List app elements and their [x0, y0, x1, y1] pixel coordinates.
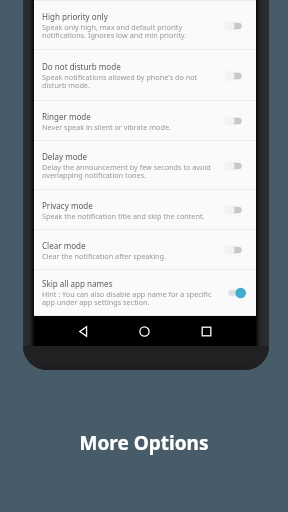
staticText: Delay mode	[42, 151, 88, 162]
staticText: Skip all app names	[42, 278, 113, 289]
button[interactable]: Ringer mode	[34, 101, 256, 141]
button[interactable]: Back	[71, 319, 95, 343]
button[interactable]: Home	[132, 319, 156, 343]
staticText: Do not disturb mode	[42, 61, 121, 72]
button[interactable]: Switch off	[224, 114, 246, 128]
staticText: High priority only	[42, 11, 108, 22]
button[interactable]: Recent apps	[194, 319, 218, 343]
button[interactable]: Switch off	[224, 203, 246, 217]
button[interactable]: Clear mode	[34, 230, 256, 270]
button[interactable]: Switch off	[224, 159, 246, 173]
button[interactable]: Privacy mode	[34, 190, 256, 230]
staticText: Speak the notification title and skip th…	[42, 211, 205, 221]
button[interactable]: Switch off	[224, 19, 246, 33]
staticText: Never speak in silent or vibrate mode.	[42, 122, 171, 132]
staticText: Ringer mode	[42, 111, 91, 122]
staticText: Speak only high, max and default priorit…	[42, 22, 187, 41]
button[interactable]: Switch off	[224, 243, 246, 257]
staticText: Delay the announcement by few seconds to…	[42, 162, 211, 181]
staticText: Clear mode	[42, 240, 86, 251]
staticText: Clear the notification after speaking.	[42, 251, 166, 261]
button[interactable]: Skip all app names	[34, 270, 256, 316]
button[interactable]: High priority only	[34, 1, 256, 50]
staticText: Privacy mode	[42, 200, 93, 211]
button[interactable]: Delay mode	[34, 141, 256, 190]
staticText: Speak notifications allowed by phone's d…	[42, 72, 198, 91]
button[interactable]: Do not disturb mode	[34, 50, 256, 101]
staticText: Hint : You can also disable app name for…	[42, 289, 212, 308]
button[interactable]: Switch off	[224, 69, 246, 83]
button[interactable]: Switch on	[224, 286, 246, 300]
staticText: More Options	[0, 430, 288, 456]
